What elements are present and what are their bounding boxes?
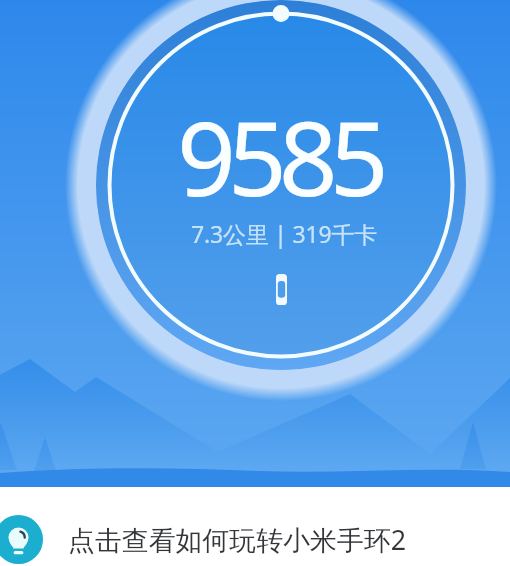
other: Mi Band bbox=[276, 274, 287, 305]
button[interactable]: Tip bbox=[0, 487, 510, 566]
staticText: 7.3公里 | 319千卡 bbox=[191, 218, 377, 249]
other: Tip bbox=[0, 515, 43, 564]
staticText: 点击查看如何玩转小米手环2 bbox=[68, 521, 407, 558]
staticText: 9585 bbox=[177, 86, 381, 226]
